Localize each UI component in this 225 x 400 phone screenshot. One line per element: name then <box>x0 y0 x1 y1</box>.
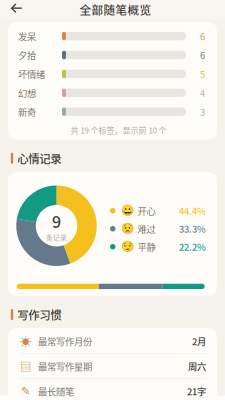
staticText: 3 <box>200 105 205 118</box>
staticText: 最常写作星期 <box>38 359 92 373</box>
staticText: 夕拾 <box>18 48 36 62</box>
staticText: 最常写作月份 <box>38 334 92 348</box>
staticText: 全部随笔概览 <box>79 1 151 18</box>
staticText: 开心 <box>137 204 155 217</box>
staticText: 周六 <box>188 359 206 373</box>
staticText: 6 <box>200 29 205 43</box>
staticText: 条记录 <box>46 232 67 242</box>
staticText: 发呆 <box>18 29 36 43</box>
staticText: 共 19 个标签，显示前 10 个 <box>70 124 166 136</box>
button[interactable]: 返回 <box>6 0 27 19</box>
staticText: 最长随笔 <box>38 384 74 398</box>
staticText: 新奇 <box>18 105 36 118</box>
staticText: 2月 <box>192 334 206 348</box>
staticText: 4 <box>200 86 205 100</box>
staticText: 33.3% <box>179 222 206 235</box>
staticText: 坏情绪 <box>18 67 45 81</box>
staticText: 幻想 <box>18 86 36 100</box>
staticText: 21字 <box>187 384 206 398</box>
staticText: 6 <box>200 48 205 62</box>
staticText: 44.4% <box>179 204 206 217</box>
staticText: ✎ <box>21 385 30 398</box>
staticText: ▤ <box>20 358 31 374</box>
staticText: 5 <box>200 67 205 81</box>
staticText: 9 <box>52 209 61 232</box>
staticText: 😀 <box>120 204 133 217</box>
staticText: 😟 <box>120 222 133 235</box>
staticText: 心情记录 <box>17 150 61 166</box>
staticText: 平静 <box>137 240 155 253</box>
staticText: 写作习惯 <box>17 306 61 323</box>
staticText: 😌 <box>120 240 133 253</box>
staticText: ☀ <box>20 333 31 349</box>
staticText: 22.2% <box>179 240 206 253</box>
staticText: 难过 <box>137 222 155 235</box>
